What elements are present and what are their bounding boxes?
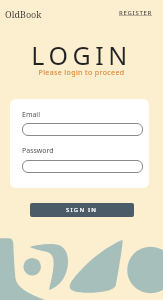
- staticText: LOGIN: [0, 38, 163, 72]
- staticText: SIGN IN: [66, 206, 98, 214]
- button[interactable]: [22, 123, 143, 136]
- button[interactable]: REGISTER: [119, 9, 153, 17]
- staticText: Please login to proceed: [0, 68, 163, 78]
- staticText: Password: [22, 146, 54, 156]
- staticText: OldBook: [5, 8, 42, 20]
- staticText: REGISTER: [119, 9, 153, 17]
- staticText: Email: [22, 110, 40, 120]
- button[interactable]: SIGN IN: [30, 203, 134, 217]
- button[interactable]: [22, 160, 143, 173]
